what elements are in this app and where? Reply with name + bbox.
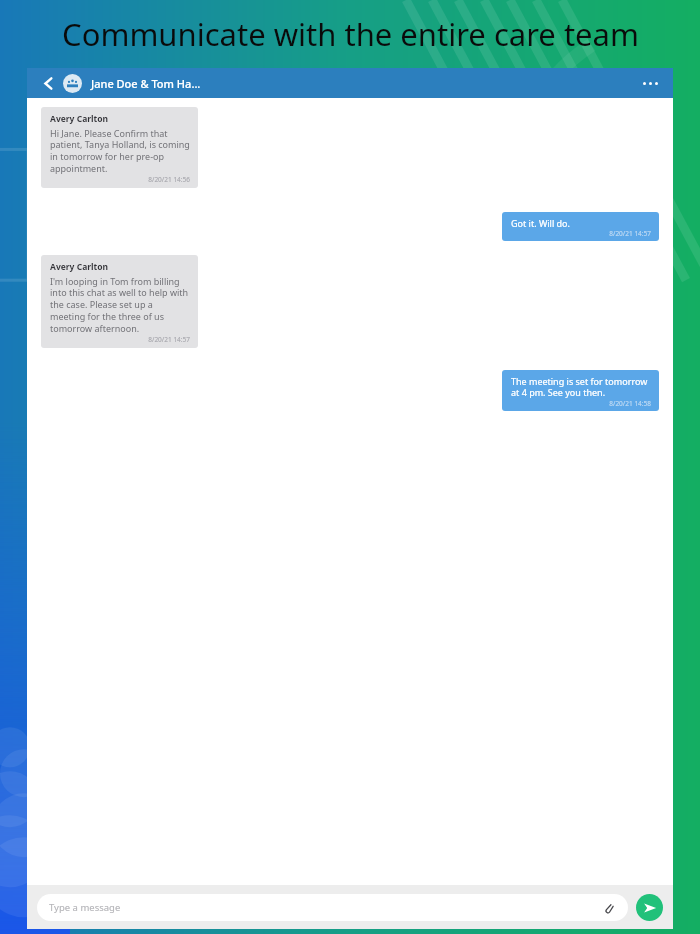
button[interactable]: Send bbox=[636, 894, 663, 921]
button[interactable]: Type a message bbox=[37, 894, 628, 921]
staticText: The meeting is set for tomorrow at 4 pm.… bbox=[511, 375, 651, 399]
button[interactable]: More options bbox=[639, 78, 662, 89]
staticText: Type a message bbox=[49, 901, 121, 914]
staticText: Communicate with the entire care team bbox=[62, 13, 639, 55]
staticText: Avery Carlton bbox=[50, 113, 109, 125]
staticText: Hi Jane. Please Confirm that patient, Ta… bbox=[50, 127, 190, 175]
staticText: I'm looping in Tom from billing into thi… bbox=[50, 275, 190, 335]
button[interactable]: Jane Doe & Tom Ha... bbox=[91, 76, 201, 91]
staticText: 8/20/21 14:57 bbox=[50, 335, 190, 344]
button[interactable]: Back bbox=[38, 73, 58, 93]
button[interactable]: Avery Carlton bbox=[41, 107, 198, 188]
staticText: 8/20/21 14:57 bbox=[511, 229, 651, 238]
button[interactable]: The meeting is set for tomorrow at 4 pm.… bbox=[502, 370, 659, 411]
staticText: Got it. Will do. bbox=[511, 217, 570, 229]
staticText: 8/20/21 14:58 bbox=[511, 399, 651, 408]
staticText: 8/20/21 14:56 bbox=[50, 175, 190, 184]
button[interactable]: Got it. Will do. bbox=[502, 212, 659, 241]
button[interactable]: Attach file bbox=[600, 900, 616, 916]
staticText: Avery Carlton bbox=[50, 261, 109, 273]
button[interactable]: Group avatar bbox=[63, 74, 82, 93]
button[interactable]: Avery Carlton bbox=[41, 255, 198, 348]
